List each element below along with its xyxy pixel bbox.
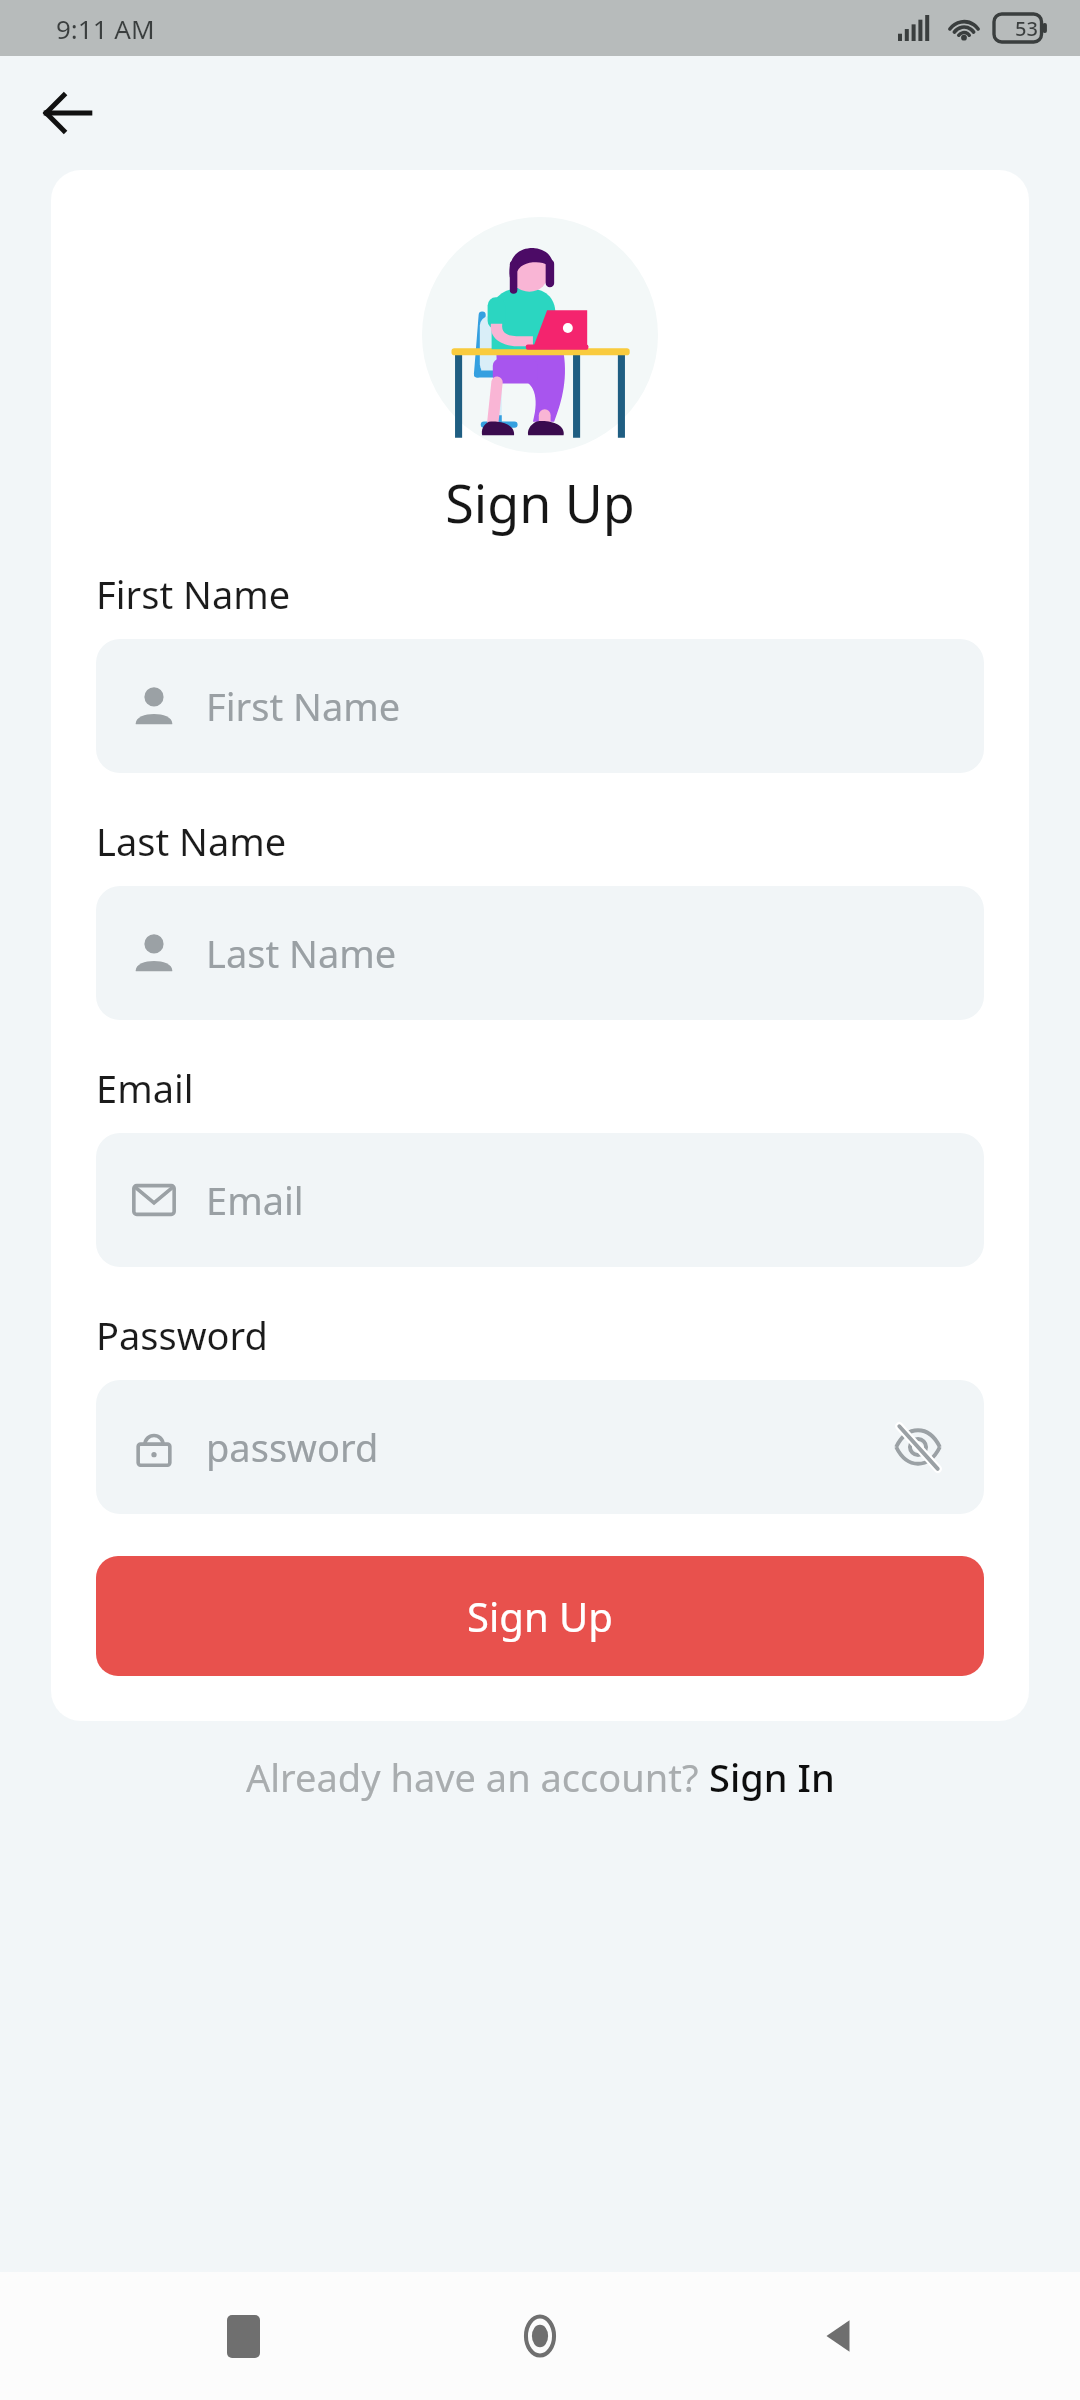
button[interactable]: Email xyxy=(96,1133,984,1267)
button[interactable]: Last Name xyxy=(96,886,984,1020)
button[interactable]: Home xyxy=(485,2281,595,2391)
staticText: Sign Up xyxy=(51,467,1029,538)
button[interactable]: Recent apps xyxy=(188,2281,298,2391)
button[interactable]: Toggle password visibility xyxy=(886,1415,950,1479)
staticText: 53 xyxy=(1015,15,1038,42)
staticText: Email xyxy=(206,1174,950,1226)
staticText: Already have an account? xyxy=(246,1751,709,1803)
staticText: Last Name xyxy=(206,927,950,979)
staticText: password xyxy=(206,1421,886,1473)
staticText: Password xyxy=(96,1309,268,1361)
staticText: Sign Up xyxy=(467,1589,613,1643)
staticText: Last Name xyxy=(96,815,287,867)
button[interactable]: Already have an account? xyxy=(0,1751,1080,1803)
button[interactable]: Sign Up xyxy=(96,1556,984,1676)
staticText: 9:11 AM xyxy=(56,11,155,46)
button[interactable]: password xyxy=(96,1380,984,1514)
staticText: First Name xyxy=(206,680,950,732)
button[interactable]: First Name xyxy=(96,639,984,773)
staticText: First Name xyxy=(96,568,291,620)
button[interactable]: Back xyxy=(783,2281,893,2391)
staticText: Sign In xyxy=(709,1751,835,1803)
staticText: Email xyxy=(96,1062,194,1114)
button[interactable]: Back xyxy=(20,65,116,161)
